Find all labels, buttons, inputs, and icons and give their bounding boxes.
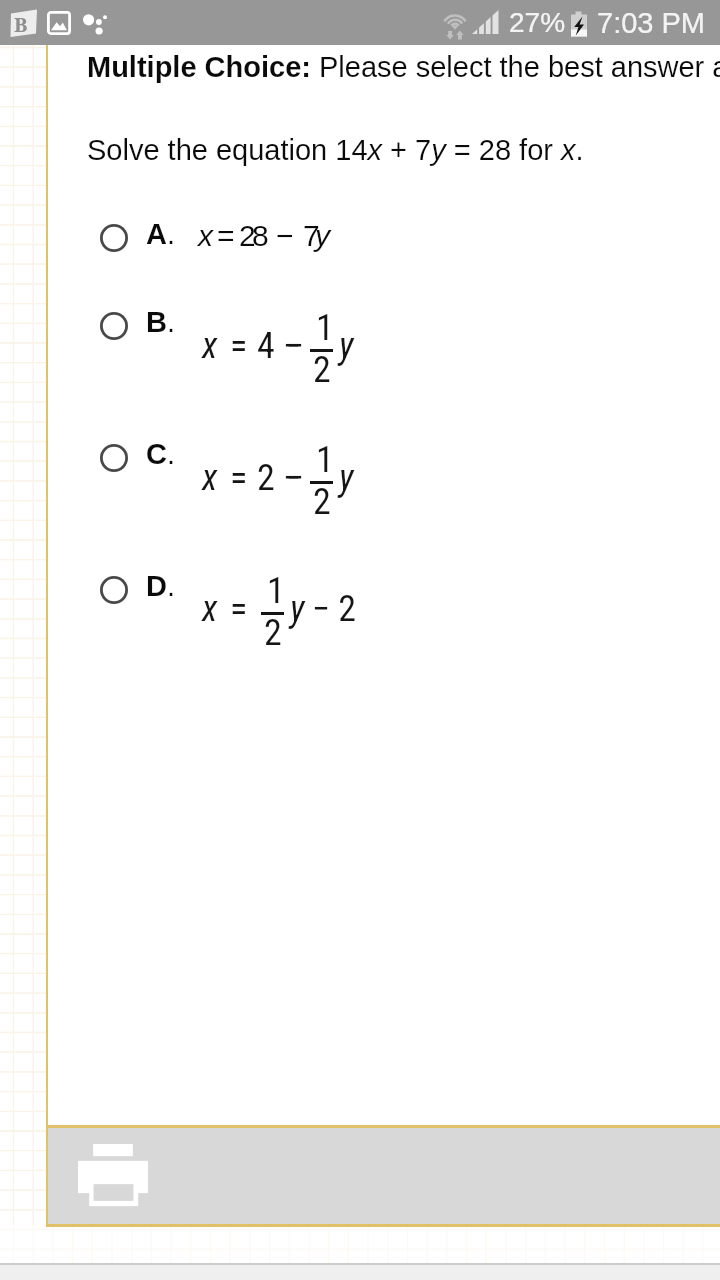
staticText: =: [217, 219, 235, 253]
staticText: x: [198, 219, 213, 253]
button[interactable]: C.: [98, 430, 658, 550]
staticText: B.: [146, 306, 175, 338]
staticText: y: [339, 325, 354, 367]
button[interactable]: A.: [98, 210, 658, 272]
staticText: 2 −: [257, 457, 302, 499]
staticText: 4 −: [257, 325, 302, 367]
staticText: Multiple Choice: Please select the best …: [87, 51, 720, 83]
staticText: x: [202, 457, 218, 499]
staticText: 7:03 PM: [597, 7, 705, 39]
staticText: 27%: [509, 7, 566, 38]
staticText: 1: [316, 307, 334, 349]
staticText: 2: [239, 219, 256, 253]
staticText: y: [290, 588, 305, 630]
staticText: D.: [146, 570, 175, 602]
staticText: =: [230, 457, 248, 499]
staticText: −: [286, 325, 304, 367]
staticText: 1: [267, 570, 285, 612]
staticText: −: [276, 219, 294, 253]
staticText: =: [230, 325, 248, 367]
staticText: y: [339, 457, 354, 499]
staticText: C.: [146, 438, 175, 470]
staticText: B: [14, 11, 28, 38]
staticText: Solve the equation 14x + 7y = 28 for x.: [87, 134, 584, 166]
button[interactable]: Print: [78, 1144, 148, 1206]
staticText: −: [286, 457, 304, 499]
staticText: x: [202, 325, 218, 367]
staticText: − 2: [312, 588, 357, 630]
staticText: 2: [313, 349, 331, 391]
staticText: A.: [146, 218, 175, 250]
staticText: 2: [313, 481, 331, 523]
staticText: 1: [316, 439, 334, 481]
staticText: =: [230, 588, 248, 630]
staticText: 2: [264, 612, 282, 654]
button[interactable]: B.: [98, 298, 658, 418]
staticText: 7: [303, 219, 320, 253]
staticText: 8: [252, 219, 269, 253]
staticText: x: [202, 588, 218, 630]
staticText: y: [315, 219, 330, 253]
button[interactable]: D.: [98, 562, 658, 682]
